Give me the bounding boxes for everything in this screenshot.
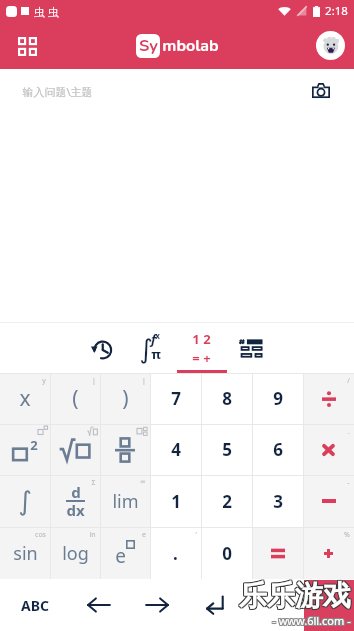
staticText: 乐乐游戏 <box>240 579 352 614</box>
staticText: 乐乐游戏 <box>240 578 352 613</box>
staticText: - www.6ll.com - <box>271 613 350 628</box>
button[interactable]: Menu <box>10 29 44 63</box>
button[interactable]: ( <box>50 373 100 424</box>
staticText: 虫 虫 <box>34 4 59 19</box>
staticText: ∫ <box>18 486 32 516</box>
staticText: 6 <box>273 438 283 461</box>
staticText: x <box>155 330 160 341</box>
button[interactable]: Enter <box>186 579 244 631</box>
button[interactable]: . <box>303 424 354 475</box>
button[interactable]: Functions <box>126 323 176 373</box>
staticText: 乐乐游戏 <box>238 577 350 612</box>
staticText: | <box>92 376 96 386</box>
staticText: 2 <box>30 436 38 454</box>
button[interactable] <box>50 424 100 475</box>
staticText: mbolab <box>162 35 219 57</box>
staticText: - www.6ll.com - <box>273 612 352 627</box>
button[interactable]: Profile <box>316 31 345 60</box>
staticText: cos <box>35 530 46 540</box>
staticText: dx <box>66 500 85 520</box>
staticText: y <box>42 376 46 386</box>
button[interactable]: / <box>303 373 354 424</box>
staticText: ) <box>122 384 129 413</box>
staticText: π <box>151 345 161 363</box>
staticText: f <box>151 330 156 348</box>
staticText: = + <box>192 349 211 367</box>
staticText: - www.6ll.com - <box>272 613 351 628</box>
staticText: 乐乐游戏 <box>240 577 352 612</box>
staticText: - www.6ll.com - <box>271 612 350 627</box>
staticText: ( <box>72 384 79 413</box>
staticText: ′ <box>195 530 197 540</box>
staticText: ln <box>89 530 96 540</box>
staticText: sin <box>13 541 38 566</box>
staticText: 7 <box>171 387 181 410</box>
staticText: ABC <box>21 596 49 615</box>
button[interactable]: ∫ <box>0 475 50 527</box>
staticText: lim <box>112 489 139 514</box>
button[interactable]: 4 <box>150 424 201 475</box>
staticText: 乐乐游戏 <box>239 578 351 613</box>
staticText: - www.6ll.com - <box>272 612 351 627</box>
staticText: - www.6ll.com - <box>271 614 350 629</box>
staticText: 乐乐游戏 <box>239 579 351 614</box>
button[interactable]: Move left <box>70 579 128 631</box>
button[interactable] <box>100 424 150 475</box>
staticText: . <box>173 542 178 565</box>
button[interactable]: 1 <box>150 475 201 527</box>
staticText: - <box>347 478 350 488</box>
staticText: 9 <box>273 387 283 410</box>
button[interactable]: 1 2 <box>176 323 226 373</box>
staticText: Σ <box>91 478 96 488</box>
button[interactable]: 0 <box>201 527 252 579</box>
staticText: 3 <box>273 490 283 513</box>
staticText: e <box>115 543 126 569</box>
staticText: e <box>142 530 146 540</box>
button[interactable] <box>252 527 303 579</box>
button[interactable]: 2 <box>201 475 252 527</box>
staticText: 5 <box>222 438 232 461</box>
button[interactable]: Move right <box>128 579 186 631</box>
button[interactable]: ) <box>100 373 150 424</box>
button[interactable]: ABC <box>0 579 70 631</box>
staticText: 0 <box>222 542 232 565</box>
staticText: 2:18 <box>325 3 348 19</box>
staticText: Sy <box>139 34 158 57</box>
staticText: 8 <box>222 387 232 410</box>
button[interactable]: - <box>303 475 354 527</box>
button[interactable]: . <box>150 527 201 579</box>
staticText: 2 <box>222 490 232 513</box>
button[interactable]: 3 <box>252 475 303 527</box>
button[interactable]: 7 <box>150 373 201 424</box>
staticText: 乐乐游戏 <box>238 578 350 613</box>
staticText: 输入问题\主题 <box>22 84 93 99</box>
staticText: 乐乐游戏 <box>239 577 351 612</box>
staticText: 1 2 <box>192 330 211 348</box>
button[interactable]: Camera <box>308 78 334 104</box>
button[interactable]: lim <box>100 475 150 527</box>
staticText: x <box>19 384 31 413</box>
button[interactable]: % <box>303 527 354 579</box>
staticText: | <box>142 376 146 386</box>
staticText: / <box>347 376 350 386</box>
button[interactable]: Keyboard layout <box>226 323 276 373</box>
button[interactable]: 6 <box>252 424 303 475</box>
staticText: - www.6ll.com - <box>272 614 351 629</box>
button[interactable]: sin <box>0 527 50 579</box>
button[interactable]: x <box>0 373 50 424</box>
button[interactable]: d <box>50 475 100 527</box>
staticText: ∞ <box>140 478 146 486</box>
staticText: - www.6ll.com - <box>273 613 352 628</box>
button[interactable]: 5 <box>201 424 252 475</box>
button[interactable]: 2 <box>0 424 50 475</box>
button[interactable]: 8 <box>201 373 252 424</box>
staticText: log <box>62 541 89 566</box>
button[interactable]: History <box>76 323 126 373</box>
staticText: 1 <box>171 490 181 513</box>
staticText: 4 <box>171 438 181 461</box>
button[interactable]: e <box>100 527 150 579</box>
button[interactable]: log <box>50 527 100 579</box>
button[interactable]: 9 <box>252 373 303 424</box>
staticText: ∫ <box>139 334 153 364</box>
staticText: % <box>344 530 350 540</box>
